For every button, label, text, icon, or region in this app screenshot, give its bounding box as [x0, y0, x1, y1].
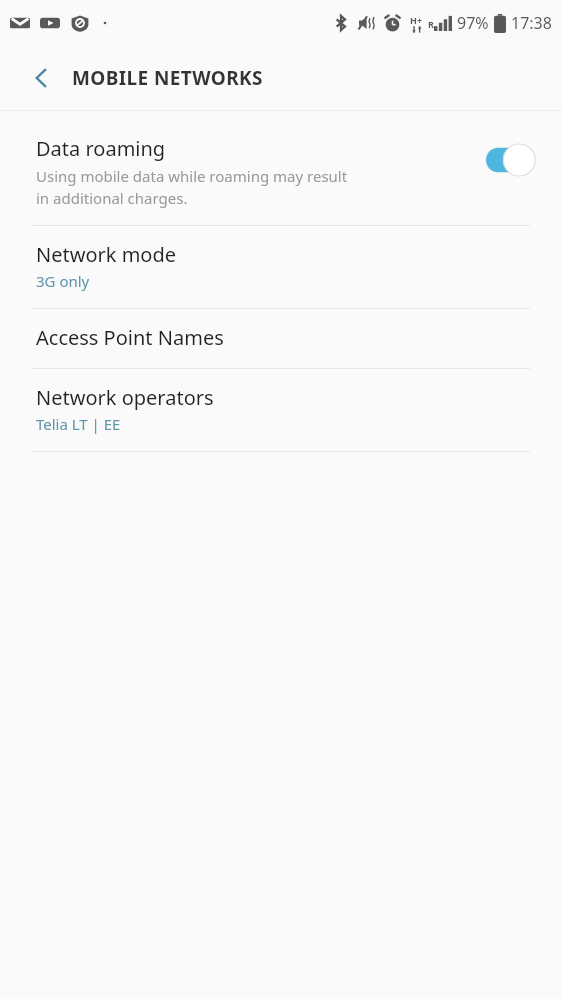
staticText: R	[428, 18, 434, 30]
button[interactable]: Network mode	[0, 226, 562, 308]
staticText: 17:38	[511, 12, 552, 34]
staticText: MOBILE NETWORKS	[72, 65, 263, 91]
button[interactable]: Back	[18, 54, 66, 102]
staticText: Network operators	[36, 384, 214, 411]
button[interactable]: Network operators	[0, 369, 562, 451]
staticText: Using mobile data while roaming may resu…	[36, 166, 348, 209]
staticText: Telia LT | EE	[36, 414, 121, 434]
staticText: Access Point Names	[36, 324, 224, 351]
staticText: Data roaming	[36, 135, 166, 162]
staticText: H+	[410, 14, 423, 26]
staticText: 97%	[457, 12, 489, 34]
staticText: 3G only	[36, 271, 90, 291]
button[interactable]: Data roaming	[0, 121, 562, 225]
button[interactable]: Access Point Names	[0, 309, 562, 368]
button[interactable]: Data roaming toggle	[486, 143, 542, 177]
staticText: Network mode	[36, 241, 177, 268]
